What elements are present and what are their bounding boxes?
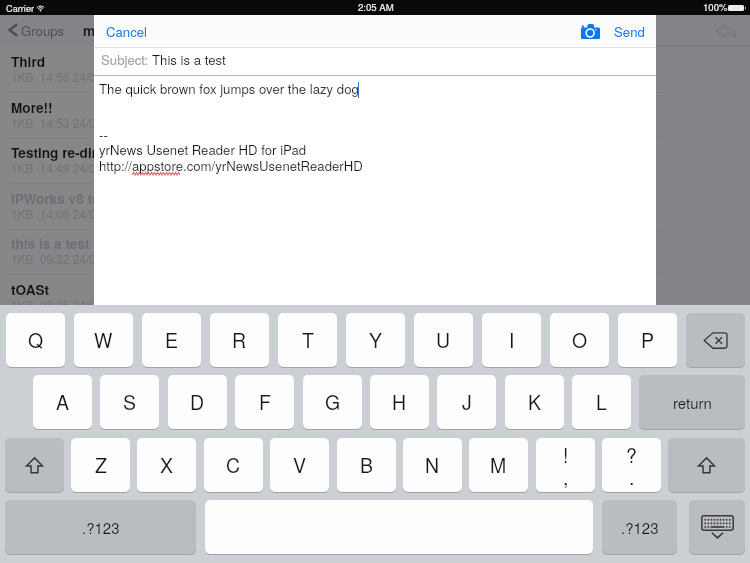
button[interactable]: Groups	[0, 15, 68, 46]
staticText: !	[563, 441, 569, 469]
button[interactable]: Backspace	[686, 313, 745, 367]
staticText: 1KB 14:56 24/04	[11, 68, 103, 85]
button[interactable]: tOASt	[0, 275, 656, 321]
button[interactable]: H	[370, 375, 429, 429]
button[interactable]: D	[168, 375, 227, 429]
staticText: F	[259, 388, 271, 416]
staticText: S	[123, 388, 137, 416]
button[interactable]: The quick brown fox jumps over the lazy …	[94, 76, 656, 305]
button[interactable]: S	[100, 375, 159, 429]
staticText: 1KB 09:32 24/04	[11, 250, 103, 267]
button[interactable]: B	[337, 438, 396, 492]
staticText: http://appstore.com/yrNewsUsenetReaderHD	[99, 156, 363, 175]
button[interactable]: V	[270, 438, 329, 492]
staticText: The quick brown fox jumps over the lazy …	[99, 79, 359, 98]
button[interactable]: A	[33, 375, 92, 429]
staticText: A	[56, 388, 70, 416]
staticText: E	[165, 326, 179, 354]
staticText: Send	[614, 22, 645, 41]
button[interactable]: P	[618, 313, 677, 367]
staticText: K	[528, 388, 542, 416]
button[interactable]: C	[204, 438, 263, 492]
staticText: D	[190, 388, 205, 416]
staticText: .?123	[82, 517, 120, 538]
button[interactable]: J	[437, 375, 496, 429]
staticText: L	[596, 388, 607, 416]
staticText: R	[232, 326, 247, 354]
staticText: 2:05 AM	[358, 0, 394, 14]
button[interactable]: !	[536, 438, 595, 492]
staticText: I	[509, 326, 515, 354]
staticText: 100%	[703, 0, 728, 14]
button[interactable]: Testing re-direct	[0, 138, 656, 184]
staticText: P	[641, 326, 655, 354]
staticText: X	[160, 451, 174, 479]
button[interactable]: R	[210, 313, 269, 367]
button[interactable]: return	[639, 375, 745, 429]
staticText: J	[462, 388, 472, 416]
button[interactable]: M	[469, 438, 528, 492]
button[interactable]: Subject:	[94, 47, 656, 75]
button[interactable]: Q	[6, 313, 65, 367]
button[interactable]: Insert photo	[572, 15, 608, 47]
staticText: Q	[28, 326, 44, 354]
button[interactable]: G	[303, 375, 362, 429]
staticText: Y	[369, 326, 383, 354]
button[interactable]: More!!	[0, 93, 656, 139]
button[interactable]: W	[74, 313, 133, 367]
staticText: More!!	[11, 98, 53, 117]
button[interactable]: L	[572, 375, 631, 429]
button[interactable]: I	[482, 313, 541, 367]
button[interactable]: U	[414, 313, 473, 367]
button[interactable]: Z	[71, 438, 130, 492]
staticText: M	[490, 451, 507, 479]
staticText: V	[293, 451, 307, 479]
staticText: .?123	[621, 517, 659, 538]
staticText: 1KB 14:49 24/04	[11, 159, 103, 176]
button[interactable]: X	[137, 438, 196, 492]
button[interactable]: ?	[602, 438, 661, 492]
staticText: ,	[563, 463, 569, 491]
button[interactable]: Third	[0, 47, 656, 93]
staticText: Carrier	[6, 1, 35, 14]
button[interactable]: .?123	[5, 500, 196, 554]
staticText: Z	[95, 451, 107, 479]
staticText: U	[436, 326, 451, 354]
button[interactable]: E	[142, 313, 201, 367]
staticText: yrNews Usenet Reader HD for iPad	[99, 140, 307, 159]
button[interactable]: Send	[602, 15, 650, 47]
staticText: tOASt	[11, 280, 50, 299]
button[interactable]: Shift	[668, 438, 745, 492]
staticText: B	[360, 451, 374, 479]
button[interactable]: O	[550, 313, 609, 367]
button[interactable]: Cancel	[94, 15, 158, 47]
staticText: .	[629, 463, 635, 491]
staticText: W	[94, 326, 113, 354]
staticText: this is a test	[11, 234, 90, 253]
staticText: C	[226, 451, 241, 479]
button[interactable]: F	[235, 375, 294, 429]
staticText: H	[392, 388, 407, 416]
staticText: Groups	[21, 21, 65, 40]
button[interactable]: this is a test	[0, 229, 656, 275]
button[interactable]: N	[403, 438, 462, 492]
staticText: T	[302, 326, 314, 354]
button[interactable]: K	[505, 375, 564, 429]
button[interactable]: .?123	[602, 500, 677, 554]
staticText: 1KB 14:06 24/04	[11, 205, 103, 222]
staticText: m	[83, 21, 96, 40]
staticText: This is a test	[152, 50, 226, 69]
staticText: return	[673, 392, 712, 413]
staticText: IPWorks v8 test	[11, 189, 112, 208]
button[interactable]: T	[278, 313, 337, 367]
button[interactable]: Reply	[708, 17, 742, 45]
button[interactable]: Hide keyboard	[689, 500, 745, 554]
staticText: Third	[11, 52, 45, 71]
staticText: Testing re-direct	[11, 143, 117, 162]
button[interactable]: IPWorks v8 test	[0, 184, 656, 230]
staticText: 1KB 08:25 24/04	[11, 296, 103, 313]
button[interactable]: Y	[346, 313, 405, 367]
button[interactable]: Shift	[5, 438, 64, 492]
staticText: 1KB 14:53 24/04	[11, 114, 103, 131]
